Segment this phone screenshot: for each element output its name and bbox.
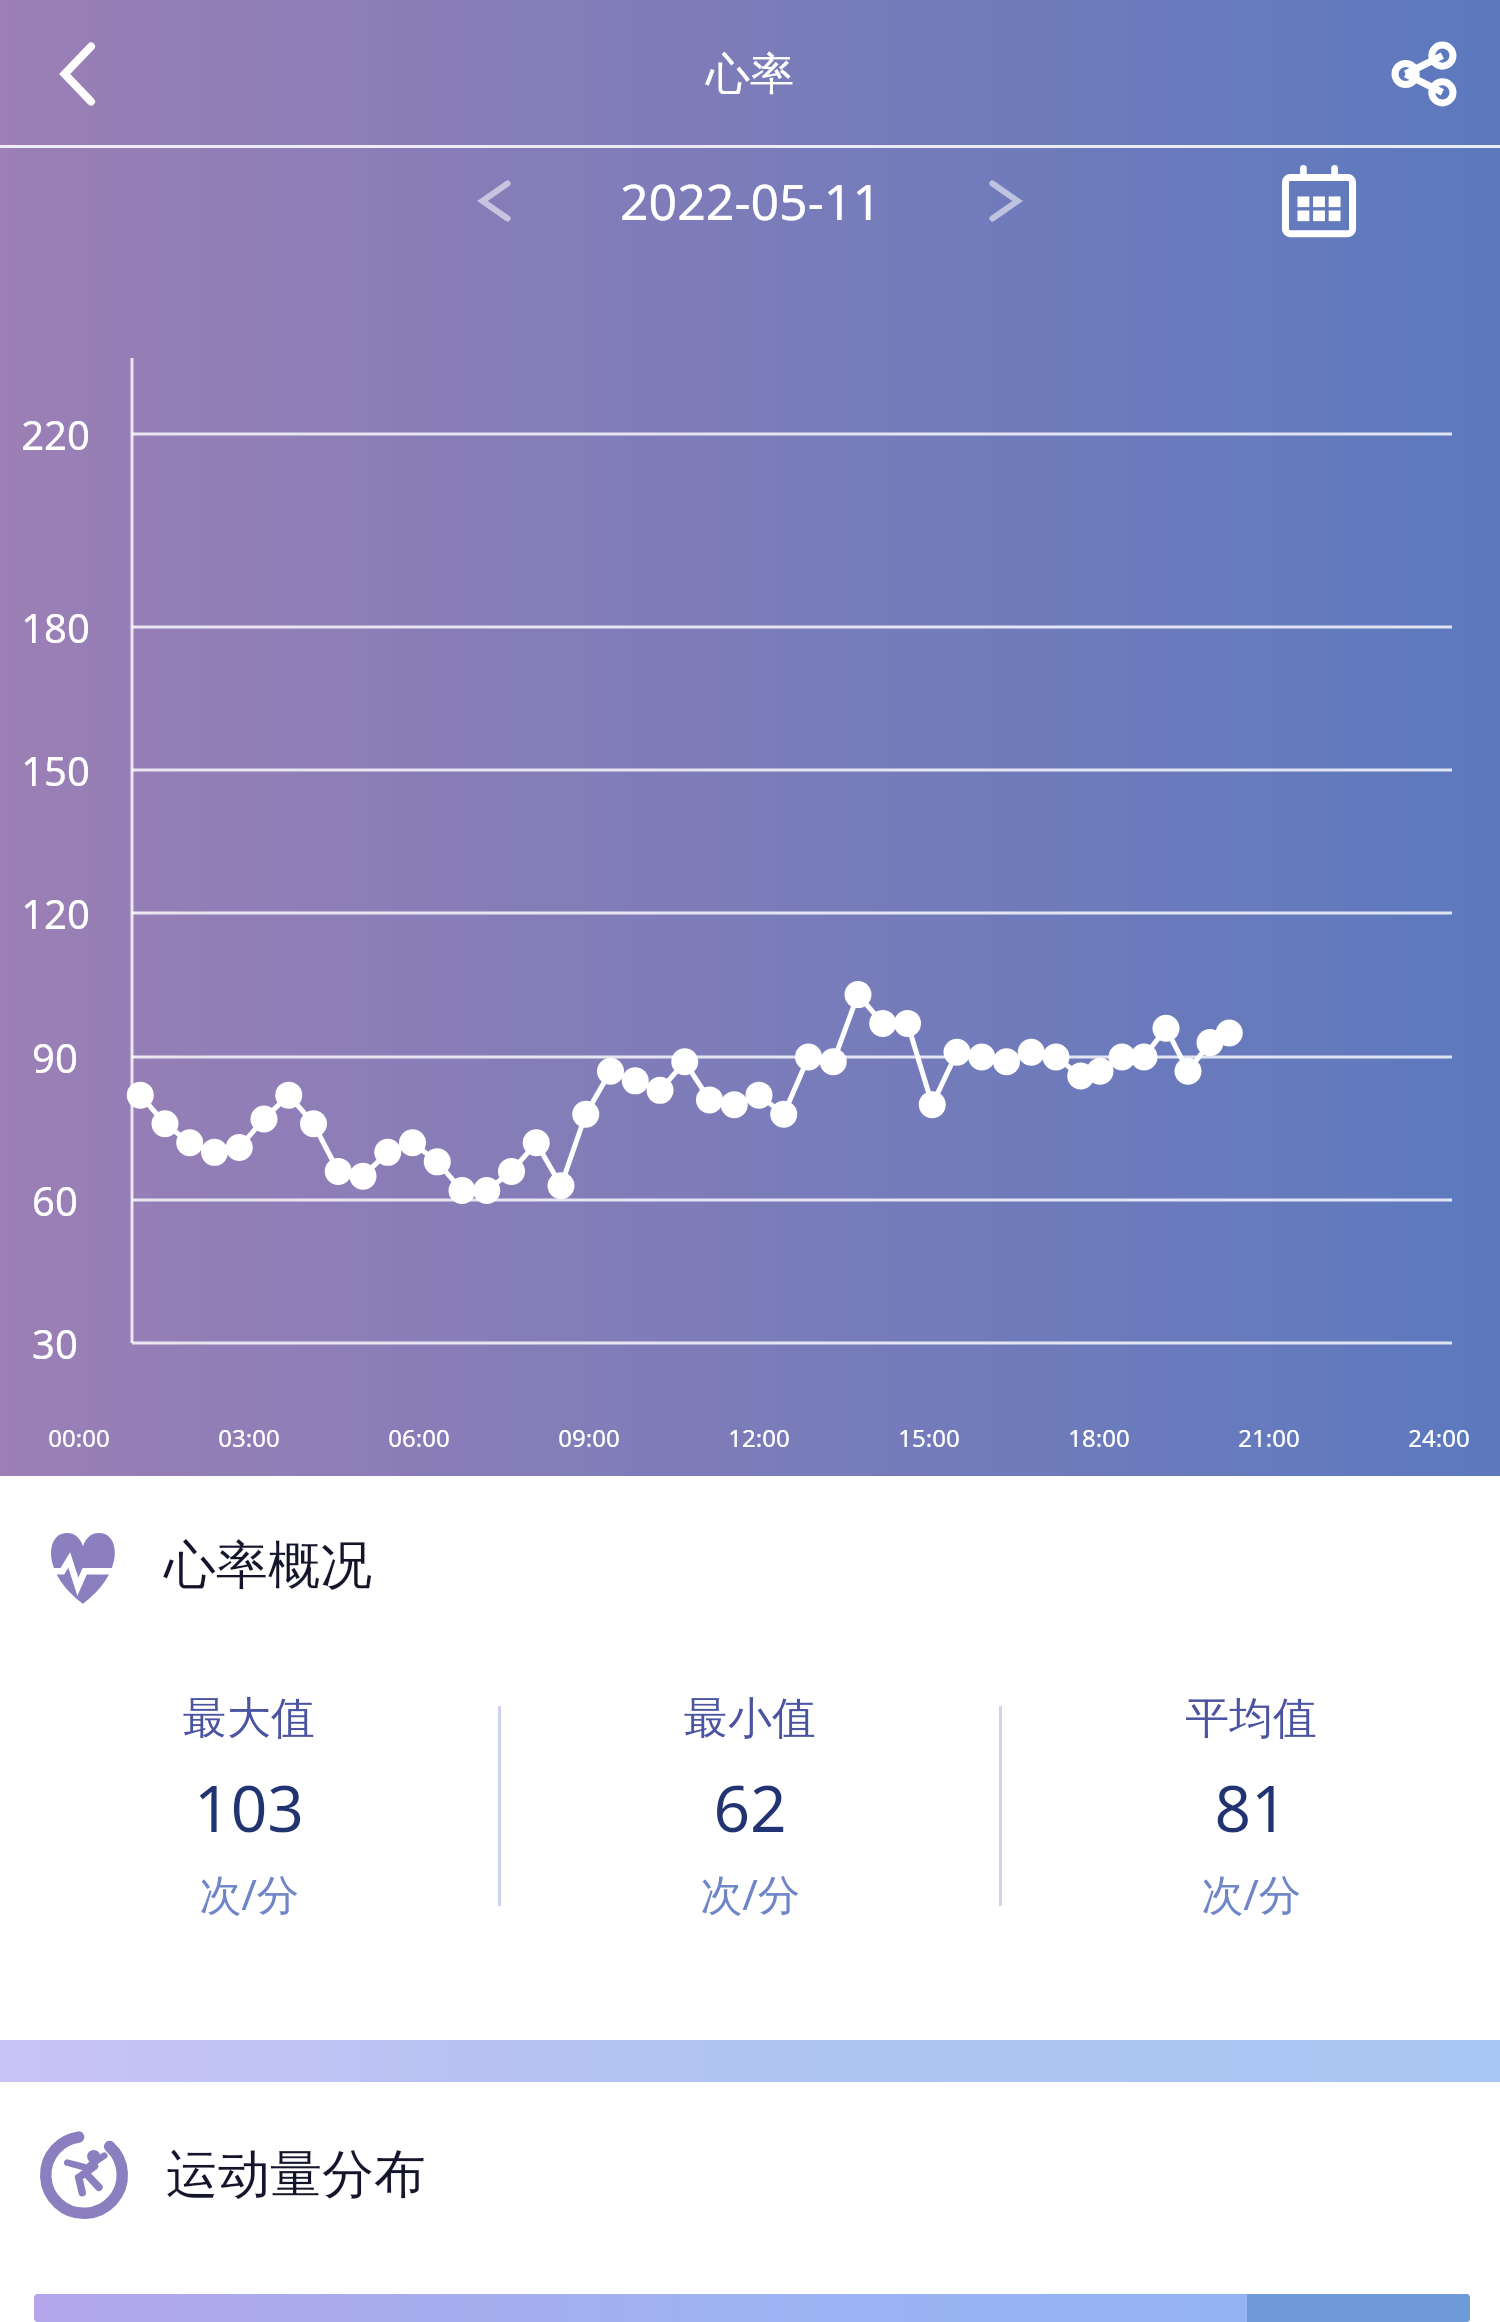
button[interactable]: 心率概况: [0, 1476, 1500, 1656]
staticText: 62: [713, 1764, 787, 1851]
staticText: 次/分: [199, 1865, 299, 1922]
staticText: 最大值: [183, 1691, 315, 1746]
staticText: 81: [1214, 1764, 1288, 1851]
button[interactable]: Back: [30, 28, 122, 120]
button[interactable]: 2022-05-11: [550, 167, 950, 235]
staticText: 心率概况: [164, 1533, 372, 1599]
staticText: 次/分: [700, 1865, 800, 1922]
staticText: 06:00: [388, 1421, 450, 1454]
staticText: 心率: [706, 47, 794, 102]
staticText: 运动量分布: [166, 2142, 426, 2208]
staticText: 220: [21, 407, 90, 461]
button[interactable]: 最小值: [501, 1656, 999, 1956]
staticText: 30: [32, 1316, 78, 1370]
button[interactable]: 平均值: [1002, 1656, 1500, 1956]
button[interactable]: 最大值: [0, 1656, 498, 1956]
staticText: 120: [21, 886, 90, 940]
button[interactable]: Open calendar: [1280, 162, 1358, 240]
staticText: 2022-05-11: [620, 167, 881, 235]
staticText: 21:00: [1238, 1421, 1300, 1454]
staticText: 最小值: [684, 1691, 816, 1746]
staticText: 90: [32, 1030, 78, 1084]
button[interactable]: 运动量分布: [0, 2082, 1500, 2268]
staticText: 次/分: [1201, 1865, 1301, 1922]
staticText: 09:00: [558, 1421, 620, 1454]
staticText: 18:00: [1068, 1421, 1130, 1454]
staticText: 103: [194, 1764, 304, 1851]
staticText: 12:00: [728, 1421, 790, 1454]
button[interactable]: Next day: [970, 166, 1040, 236]
button[interactable]: Share: [1378, 28, 1470, 120]
staticText: 180: [21, 600, 90, 654]
staticText: 平均值: [1185, 1691, 1317, 1746]
staticText: 60: [32, 1173, 78, 1227]
staticText: 150: [21, 743, 90, 797]
staticText: 00:00: [48, 1421, 110, 1454]
staticText: 24:00: [1408, 1421, 1470, 1454]
staticText: 15:00: [898, 1421, 960, 1454]
button[interactable]: Previous day: [460, 166, 530, 236]
staticText: 03:00: [218, 1421, 280, 1454]
